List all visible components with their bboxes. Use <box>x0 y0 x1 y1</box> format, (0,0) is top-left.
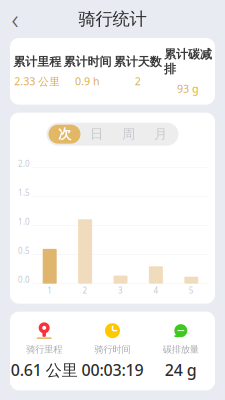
staticText: 周 <box>122 126 135 142</box>
staticText: 累计天数 <box>114 54 162 69</box>
staticText: 2.0 <box>18 158 30 169</box>
button[interactable]: 月 <box>144 125 176 144</box>
staticText: 93 g <box>177 81 199 96</box>
staticText: 0.61 公里 <box>11 359 78 380</box>
button[interactable]: 周 <box>112 125 144 144</box>
button[interactable]: Back <box>0 6 30 32</box>
staticText: 0.0 <box>18 274 30 285</box>
staticText: 1 <box>47 285 52 296</box>
staticText: 1.0 <box>18 216 30 227</box>
staticText: 月 <box>154 126 167 142</box>
staticText: 2 <box>83 285 88 296</box>
staticText: 次 <box>58 126 71 142</box>
staticText: 0.5 <box>18 245 30 256</box>
staticText: 4 <box>153 285 158 296</box>
staticText: 骑行里程 <box>26 344 62 355</box>
staticText: 累计碳减排 <box>164 47 212 76</box>
staticText: 骑行时间 <box>94 344 130 355</box>
staticText: 0.9 h <box>75 74 100 88</box>
staticText: 00:03:19 <box>81 359 143 380</box>
staticText: 2.33 公里 <box>14 74 60 88</box>
staticText: ‹ <box>11 1 18 37</box>
staticText: 日 <box>90 126 103 142</box>
staticText: 骑行统计 <box>78 8 146 30</box>
staticText: 1.5 <box>18 187 30 198</box>
staticText: 5 <box>189 285 194 296</box>
staticText: 2 <box>135 74 141 88</box>
staticText: 碳排放量 <box>163 344 199 355</box>
staticText: 累计时间 <box>63 54 111 69</box>
button[interactable]: 次 <box>48 125 80 144</box>
button[interactable]: 日 <box>80 125 112 144</box>
staticText: 累计里程 <box>13 54 61 69</box>
staticText: 3 <box>118 285 123 296</box>
staticText: 24 g <box>165 359 197 380</box>
